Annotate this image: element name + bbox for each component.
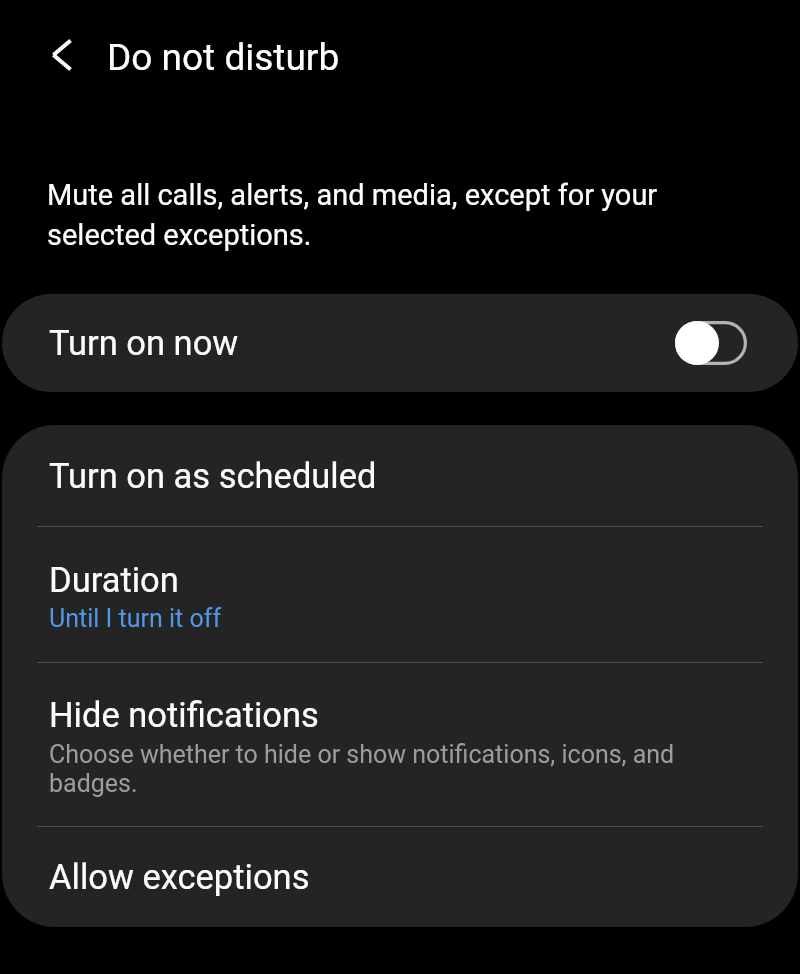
staticText: Turn on now: [49, 323, 675, 363]
button[interactable]: Allow exceptions: [2, 827, 798, 927]
staticText: Mute all calls, alerts, and media, excep…: [47, 178, 658, 253]
staticText: Until I turn it off: [49, 604, 222, 633]
staticText: Duration: [49, 560, 179, 600]
button[interactable]: Hide notifications: [2, 663, 798, 826]
staticText: Choose whether to hide or show notificat…: [49, 740, 675, 798]
staticText: Allow exceptions: [49, 857, 310, 897]
staticText: Turn on as scheduled: [49, 456, 377, 496]
button[interactable]: Turn on now: [675, 321, 747, 365]
staticText: Do not disturb: [107, 36, 340, 79]
staticText: Hide notifications: [49, 695, 319, 735]
button[interactable]: Turn on now: [2, 294, 798, 392]
button[interactable]: Turn on as scheduled: [2, 425, 798, 526]
button[interactable]: Navigate up: [29, 22, 95, 88]
button[interactable]: Duration: [2, 527, 798, 662]
